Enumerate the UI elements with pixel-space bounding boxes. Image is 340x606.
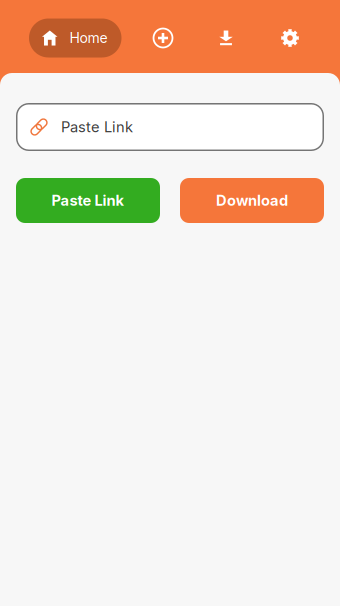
button[interactable]: Download — [180, 178, 324, 223]
button[interactable]: Home — [29, 18, 121, 57]
button[interactable]: Add — [144, 19, 182, 57]
staticText: Download — [216, 192, 288, 209]
button[interactable]: Settings — [271, 19, 309, 57]
staticText: Home — [69, 29, 107, 46]
button[interactable]: Downloads — [207, 19, 245, 57]
button[interactable]: Paste Link — [16, 178, 160, 223]
staticText: Paste Link — [51, 192, 124, 209]
staticText: Paste Link — [61, 118, 133, 136]
